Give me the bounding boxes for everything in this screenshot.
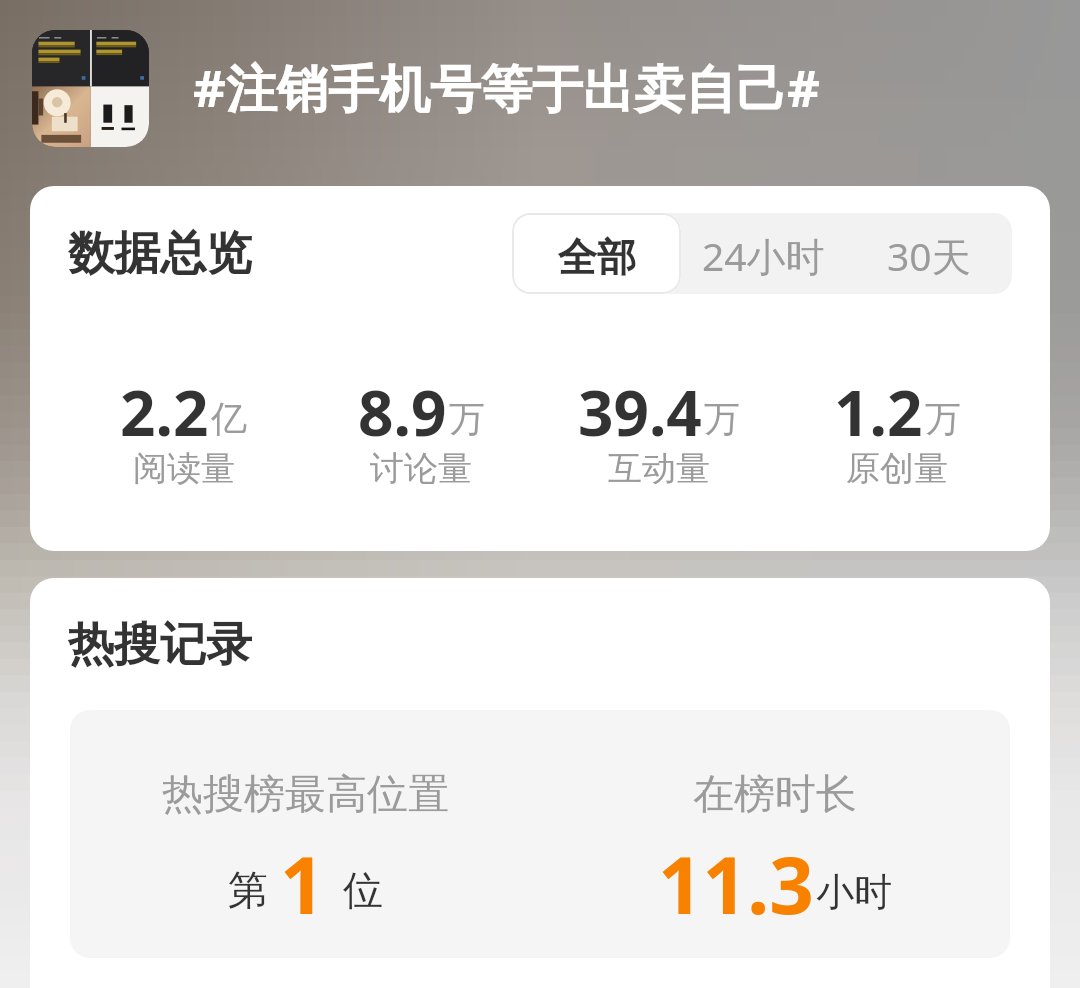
staticText: 8.9 [358,370,447,454]
staticText: 1.2 [834,370,923,454]
button[interactable]: 全部 [512,213,681,294]
staticText: 30天 [887,229,971,282]
staticText: 万 [449,396,485,441]
staticText: 热搜榜最高位置 [162,769,449,821]
staticText: 小时 [816,868,892,916]
staticText: 位 [343,865,383,915]
staticText: 互动量 [608,447,710,490]
button[interactable]: Topic image [32,30,149,147]
staticText: 亿 [211,396,247,441]
button[interactable]: 8.9 [302,370,540,497]
staticText: 24小时 [702,229,825,282]
staticText: 数据总览 [68,225,252,283]
button[interactable]: 30天 [846,213,1012,294]
staticText: 1 [280,831,325,937]
button[interactable]: 1.2 [778,370,1016,497]
button[interactable]: 24小时 [681,213,846,294]
staticText: #注销手机号等于出卖自己# [193,52,820,122]
staticText: 阅读量 [133,447,235,490]
staticText: 万 [704,396,740,441]
staticText: 2.2 [120,370,209,454]
staticText: 39.4 [578,370,702,454]
button[interactable]: 39.4 [540,370,778,497]
staticText: 在榜时长 [693,769,857,821]
staticText: 11.3 [658,831,814,937]
staticText: 万 [925,396,961,441]
staticText: 热搜记录 [68,616,252,674]
staticText: 原创量 [846,447,948,490]
staticText: 全部 [558,233,636,282]
button[interactable]: 2.2 [65,370,302,497]
staticText: 讨论量 [370,447,472,490]
staticText: 第 [228,865,268,915]
